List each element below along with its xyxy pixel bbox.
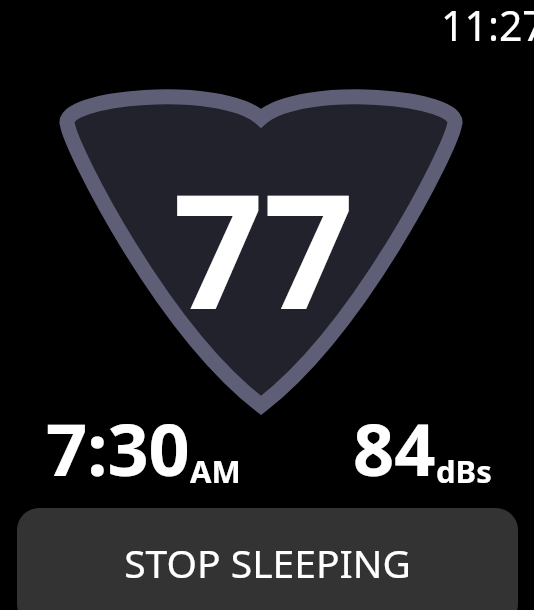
staticText: 77 xyxy=(173,140,354,355)
button[interactable]: STOP SLEEPING xyxy=(17,508,518,610)
staticText: 84 xyxy=(353,399,436,497)
staticText: STOP SLEEPING xyxy=(124,536,411,589)
staticText: 7:30 xyxy=(46,399,190,497)
staticText: dBs xyxy=(436,450,492,492)
staticText: AM xyxy=(190,450,241,492)
staticText: 11:27 xyxy=(441,0,534,53)
